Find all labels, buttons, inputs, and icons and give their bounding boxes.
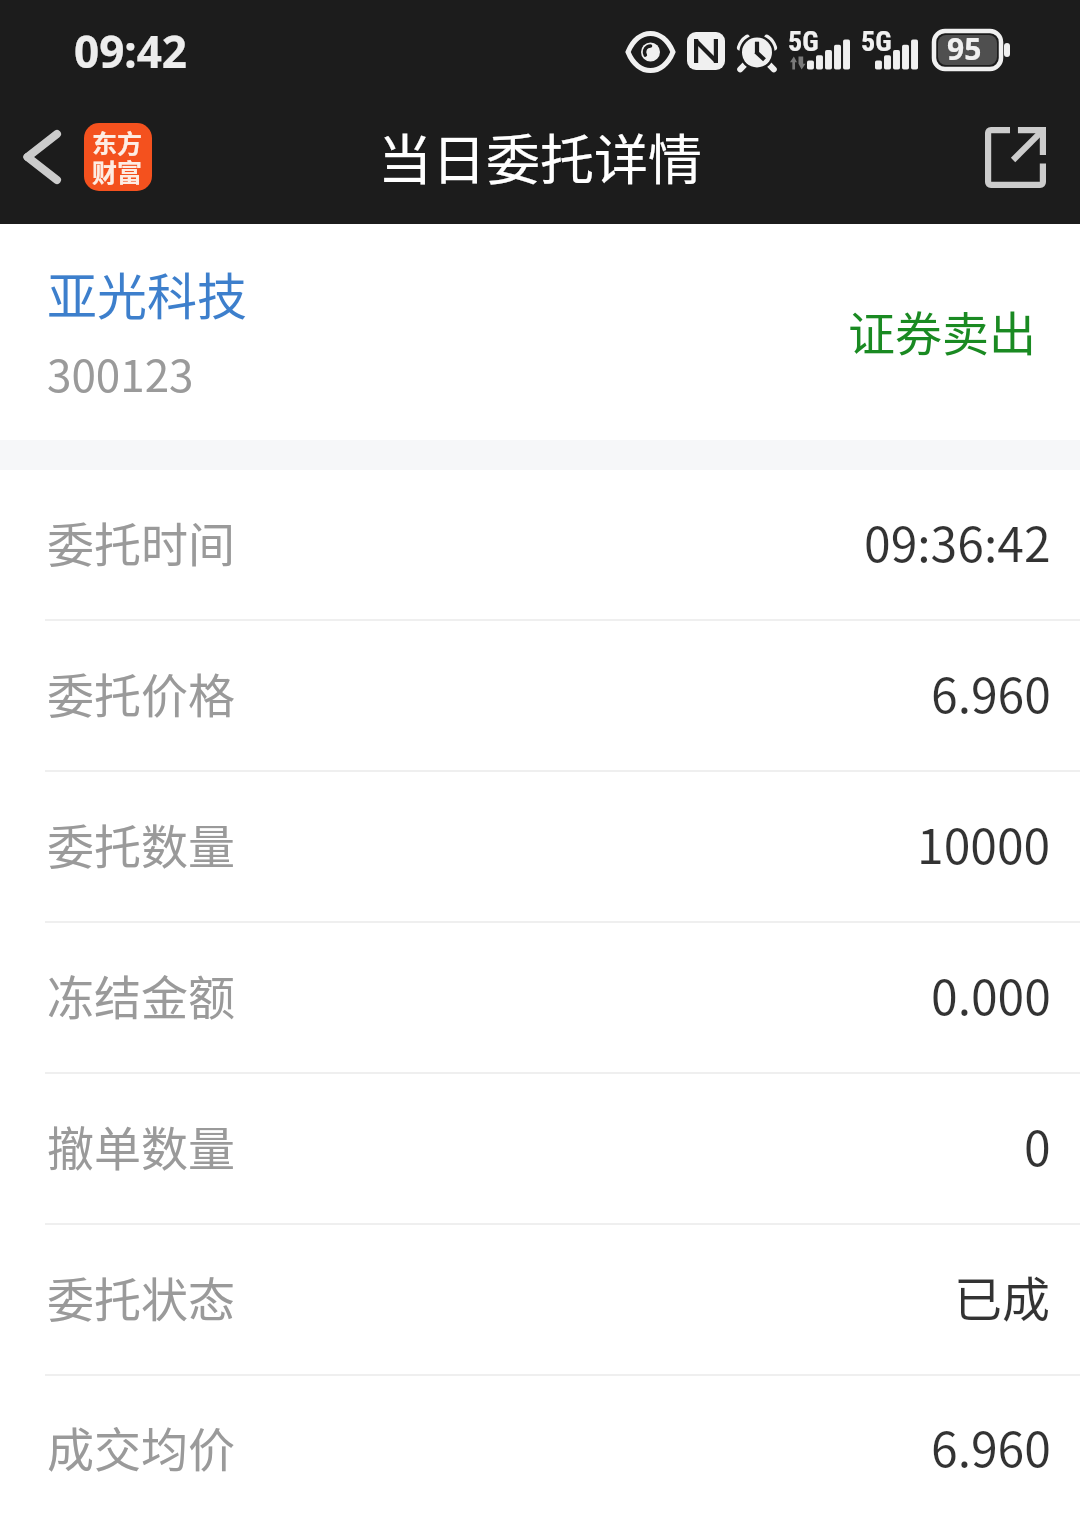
staticText: 0 <box>1024 1110 1051 1180</box>
button[interactable]: Back <box>0 97 84 217</box>
staticText: 09:36:42 <box>864 506 1051 576</box>
staticText: 委托时间 <box>47 507 235 575</box>
staticText: 300123 <box>47 341 194 405</box>
staticText: 撤单数量 <box>47 1111 235 1179</box>
staticText: 亚光科技 <box>47 257 247 329</box>
staticText: 6.960 <box>931 1411 1051 1481</box>
staticText: 冻结金额 <box>47 960 235 1028</box>
staticText: 东方 <box>92 124 143 160</box>
staticText: 09:42 <box>74 21 188 81</box>
staticText: 6.960 <box>931 657 1051 727</box>
button[interactable]: 成交均价 <box>0 1376 1080 1523</box>
button[interactable]: 委托数量 <box>0 772 1080 921</box>
staticText: 5G <box>861 25 892 58</box>
button[interactable]: 委托价格 <box>0 621 1080 770</box>
staticText: 成交均价 <box>47 1412 235 1480</box>
staticText: 当日委托详情 <box>0 117 1080 195</box>
button[interactable]: Share <box>955 97 1075 217</box>
staticText: 委托价格 <box>47 658 235 726</box>
staticText: 委托数量 <box>47 809 235 877</box>
staticText: 已成 <box>954 1261 1051 1331</box>
button[interactable]: 委托状态 <box>0 1225 1080 1374</box>
button[interactable]: East Money logo <box>84 123 152 191</box>
staticText: 0.000 <box>931 959 1051 1029</box>
staticText: 5G <box>788 25 819 58</box>
staticText: 财富 <box>92 153 143 189</box>
staticText: 证券卖出 <box>848 296 1036 364</box>
button[interactable]: 冻结金额 <box>0 923 1080 1072</box>
button[interactable]: 撤单数量 <box>0 1074 1080 1223</box>
staticText: 10000 <box>917 808 1051 878</box>
staticText: 95 <box>947 28 982 69</box>
staticText: 委托状态 <box>47 1262 235 1330</box>
button[interactable]: 委托时间 <box>0 470 1080 619</box>
